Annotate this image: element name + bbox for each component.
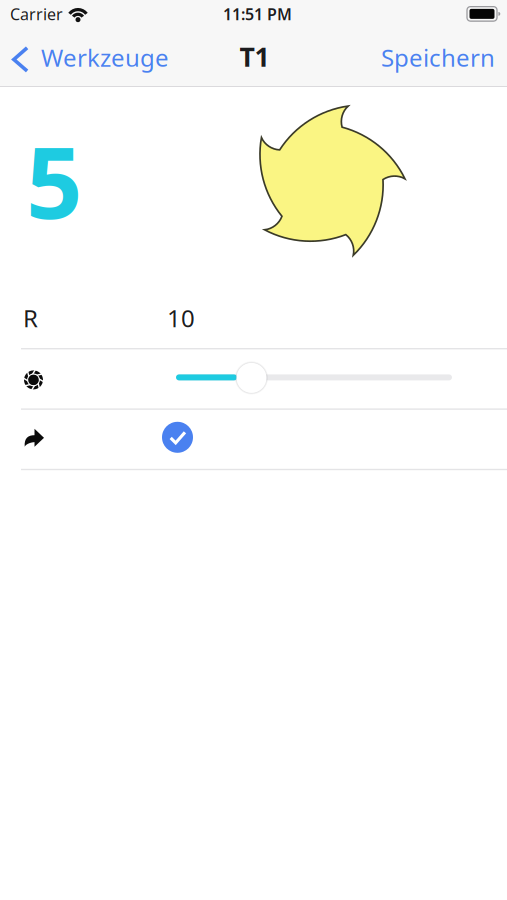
staticText: Werkzeuge xyxy=(41,42,169,73)
staticText: T1 xyxy=(239,39,269,74)
staticText: 10 xyxy=(167,302,195,334)
staticText: R xyxy=(23,302,38,334)
button[interactable]: R xyxy=(0,288,507,348)
button[interactable]: Werkzeuge xyxy=(0,34,177,87)
button[interactable]: Size xyxy=(229,355,274,400)
staticText: 5 xyxy=(26,115,82,246)
button[interactable]: Speichern xyxy=(369,34,507,87)
button[interactable]: Confirm xyxy=(157,417,198,458)
staticText: Speichern xyxy=(381,42,495,73)
staticText: 11:51 PM xyxy=(223,3,292,25)
staticText: Carrier xyxy=(10,3,63,25)
